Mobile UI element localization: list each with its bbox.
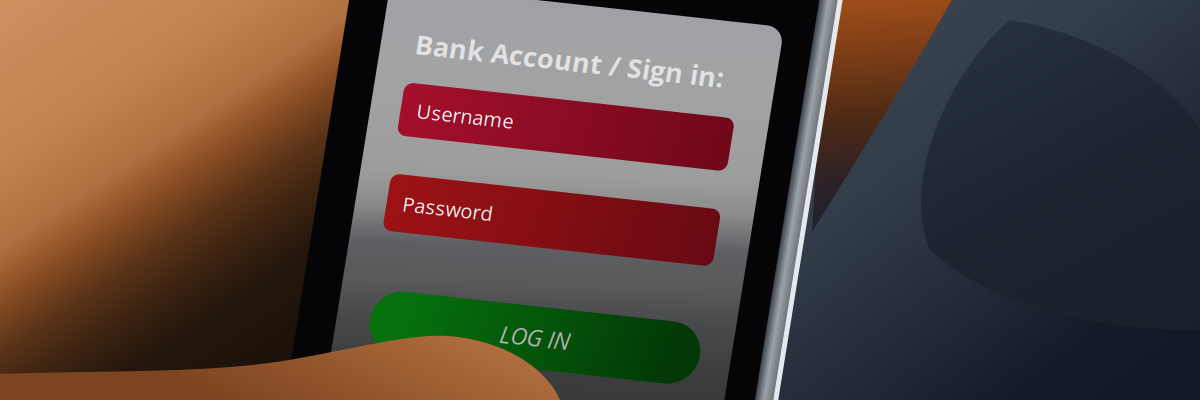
staticText: Forgot your password? — [418, 331, 601, 355]
staticText: Password — [428, 143, 518, 170]
staticText: Username — [427, 50, 524, 77]
staticText: Bank Account / Sign in: — [415, 0, 724, 16]
button[interactable]: Username — [411, 37, 741, 90]
button[interactable]: LOG IN — [414, 243, 744, 305]
button[interactable]: Password — [412, 128, 742, 185]
